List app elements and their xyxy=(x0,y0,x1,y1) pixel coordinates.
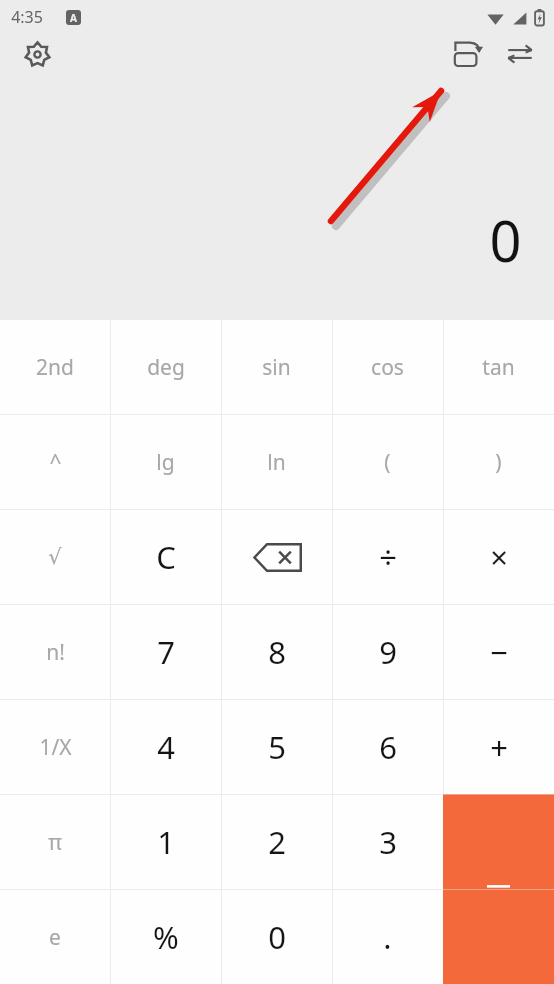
staticText: 4:35 xyxy=(11,6,43,28)
staticText: 1 xyxy=(157,821,175,863)
staticText: − xyxy=(490,631,508,673)
staticText: n! xyxy=(46,638,65,667)
staticText: deg xyxy=(147,353,185,382)
button[interactable]: tan xyxy=(443,320,554,414)
button[interactable]: C xyxy=(110,510,221,604)
button[interactable]: 1 xyxy=(110,795,221,889)
staticText: 1/X xyxy=(39,733,72,762)
button[interactable]: n! xyxy=(0,605,110,699)
button[interactable]: Switch mode xyxy=(494,28,546,80)
staticText: ) xyxy=(495,448,502,477)
button[interactable]: Backspace xyxy=(221,510,332,604)
button[interactable]: sin xyxy=(221,320,332,414)
staticText: 7 xyxy=(157,631,175,673)
button[interactable] xyxy=(443,795,554,889)
button[interactable]: lg xyxy=(110,415,221,509)
staticText: 3 xyxy=(379,821,397,863)
staticText: + xyxy=(490,726,508,768)
button[interactable]: ) xyxy=(443,415,554,509)
button[interactable]: 4 xyxy=(110,700,221,794)
staticText: ^ xyxy=(49,448,62,477)
button[interactable]: ÷ xyxy=(332,510,443,604)
staticText: 4 xyxy=(157,726,175,768)
staticText: 0 xyxy=(489,202,522,278)
staticText: 2 xyxy=(268,821,286,863)
button[interactable]: − xyxy=(443,605,554,699)
button[interactable]: 5 xyxy=(221,700,332,794)
button[interactable]: √ xyxy=(0,510,110,604)
button[interactable]: 0 xyxy=(221,890,332,984)
staticText: 9 xyxy=(379,631,397,673)
staticText: 0 xyxy=(268,916,286,958)
button[interactable]: % xyxy=(110,890,221,984)
staticText: lg xyxy=(156,448,175,477)
button[interactable]: cos xyxy=(332,320,443,414)
staticText: ( xyxy=(384,448,391,477)
staticText: 6 xyxy=(379,726,397,768)
button[interactable]: ( xyxy=(332,415,443,509)
other: Backspace xyxy=(252,543,302,572)
staticText: e xyxy=(49,923,61,952)
button[interactable]: π xyxy=(0,795,110,889)
button[interactable]: 6 xyxy=(332,700,443,794)
staticText: % xyxy=(153,916,179,958)
staticText: √ xyxy=(48,545,62,569)
button[interactable]: × xyxy=(443,510,554,604)
staticText: π xyxy=(48,828,62,857)
staticText: 2nd xyxy=(36,353,74,382)
button[interactable]: deg xyxy=(110,320,221,414)
staticText: ln xyxy=(267,448,286,477)
button[interactable]: e xyxy=(0,890,110,984)
staticText: cos xyxy=(371,353,404,382)
button[interactable]: 7 xyxy=(110,605,221,699)
staticText: C xyxy=(156,536,176,578)
button[interactable]: 3 xyxy=(332,795,443,889)
staticText: 8 xyxy=(268,631,286,673)
staticText: 5 xyxy=(268,726,286,768)
button[interactable]: 2nd xyxy=(0,320,110,414)
staticText: ÷ xyxy=(379,536,397,578)
staticText: tan xyxy=(482,353,515,382)
button[interactable]: Settings xyxy=(14,31,60,77)
button[interactable]: + xyxy=(443,700,554,794)
button[interactable]: . xyxy=(332,890,443,984)
button[interactable]: ^ xyxy=(0,415,110,509)
button[interactable]: 9 xyxy=(332,605,443,699)
button[interactable]: 1/X xyxy=(0,700,110,794)
staticText: × xyxy=(490,536,508,578)
button[interactable]: ln xyxy=(221,415,332,509)
staticText: sin xyxy=(262,353,291,382)
button[interactable]: 2 xyxy=(221,795,332,889)
button[interactable]: 8 xyxy=(221,605,332,699)
button[interactable]: Rotate screen xyxy=(442,28,494,80)
staticText: . xyxy=(383,916,392,958)
staticText: A xyxy=(70,11,77,25)
